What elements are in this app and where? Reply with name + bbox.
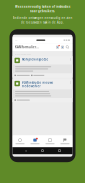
staticText: VGM instructie nieuwe medewerker (21, 81, 53, 88)
button[interactable]: Bewerken (60, 45, 65, 50)
staticText: naar gebruikers. (30, 9, 55, 13)
staticText: OPENSTAANDE TAKEN (15, 53, 31, 55)
button[interactable]: VGM instructie nieuwe medewerker (12, 79, 72, 102)
button[interactable]: Terug (21, 148, 29, 154)
staticText: KAM formulier... (15, 45, 39, 49)
button[interactable]: Recente apps (55, 148, 63, 154)
button[interactable]: Werkplekinspectie (12, 56, 72, 77)
staticText: ◁ (24, 149, 26, 152)
staticText: 9:41 (15, 39, 18, 41)
button[interactable]: Tabblad 1 (12, 138, 27, 144)
button[interactable]: Home (38, 148, 46, 154)
staticText: Werkplekinspectie (21, 58, 48, 61)
button[interactable]: Zoeken (65, 45, 70, 50)
staticText: de toegewezen taak in de App. (21, 21, 64, 24)
staticText: Wees eenvoudig taken of instructies (15, 5, 70, 8)
button[interactable]: Tabblad 4 (57, 138, 72, 144)
staticText: Bediende ontvangen eenvoudig en zien (12, 16, 72, 20)
button[interactable]: Tabblad 3 (42, 138, 57, 144)
button[interactable]: Notificaties (55, 45, 60, 50)
button[interactable]: Tabblad 2 (27, 138, 42, 144)
